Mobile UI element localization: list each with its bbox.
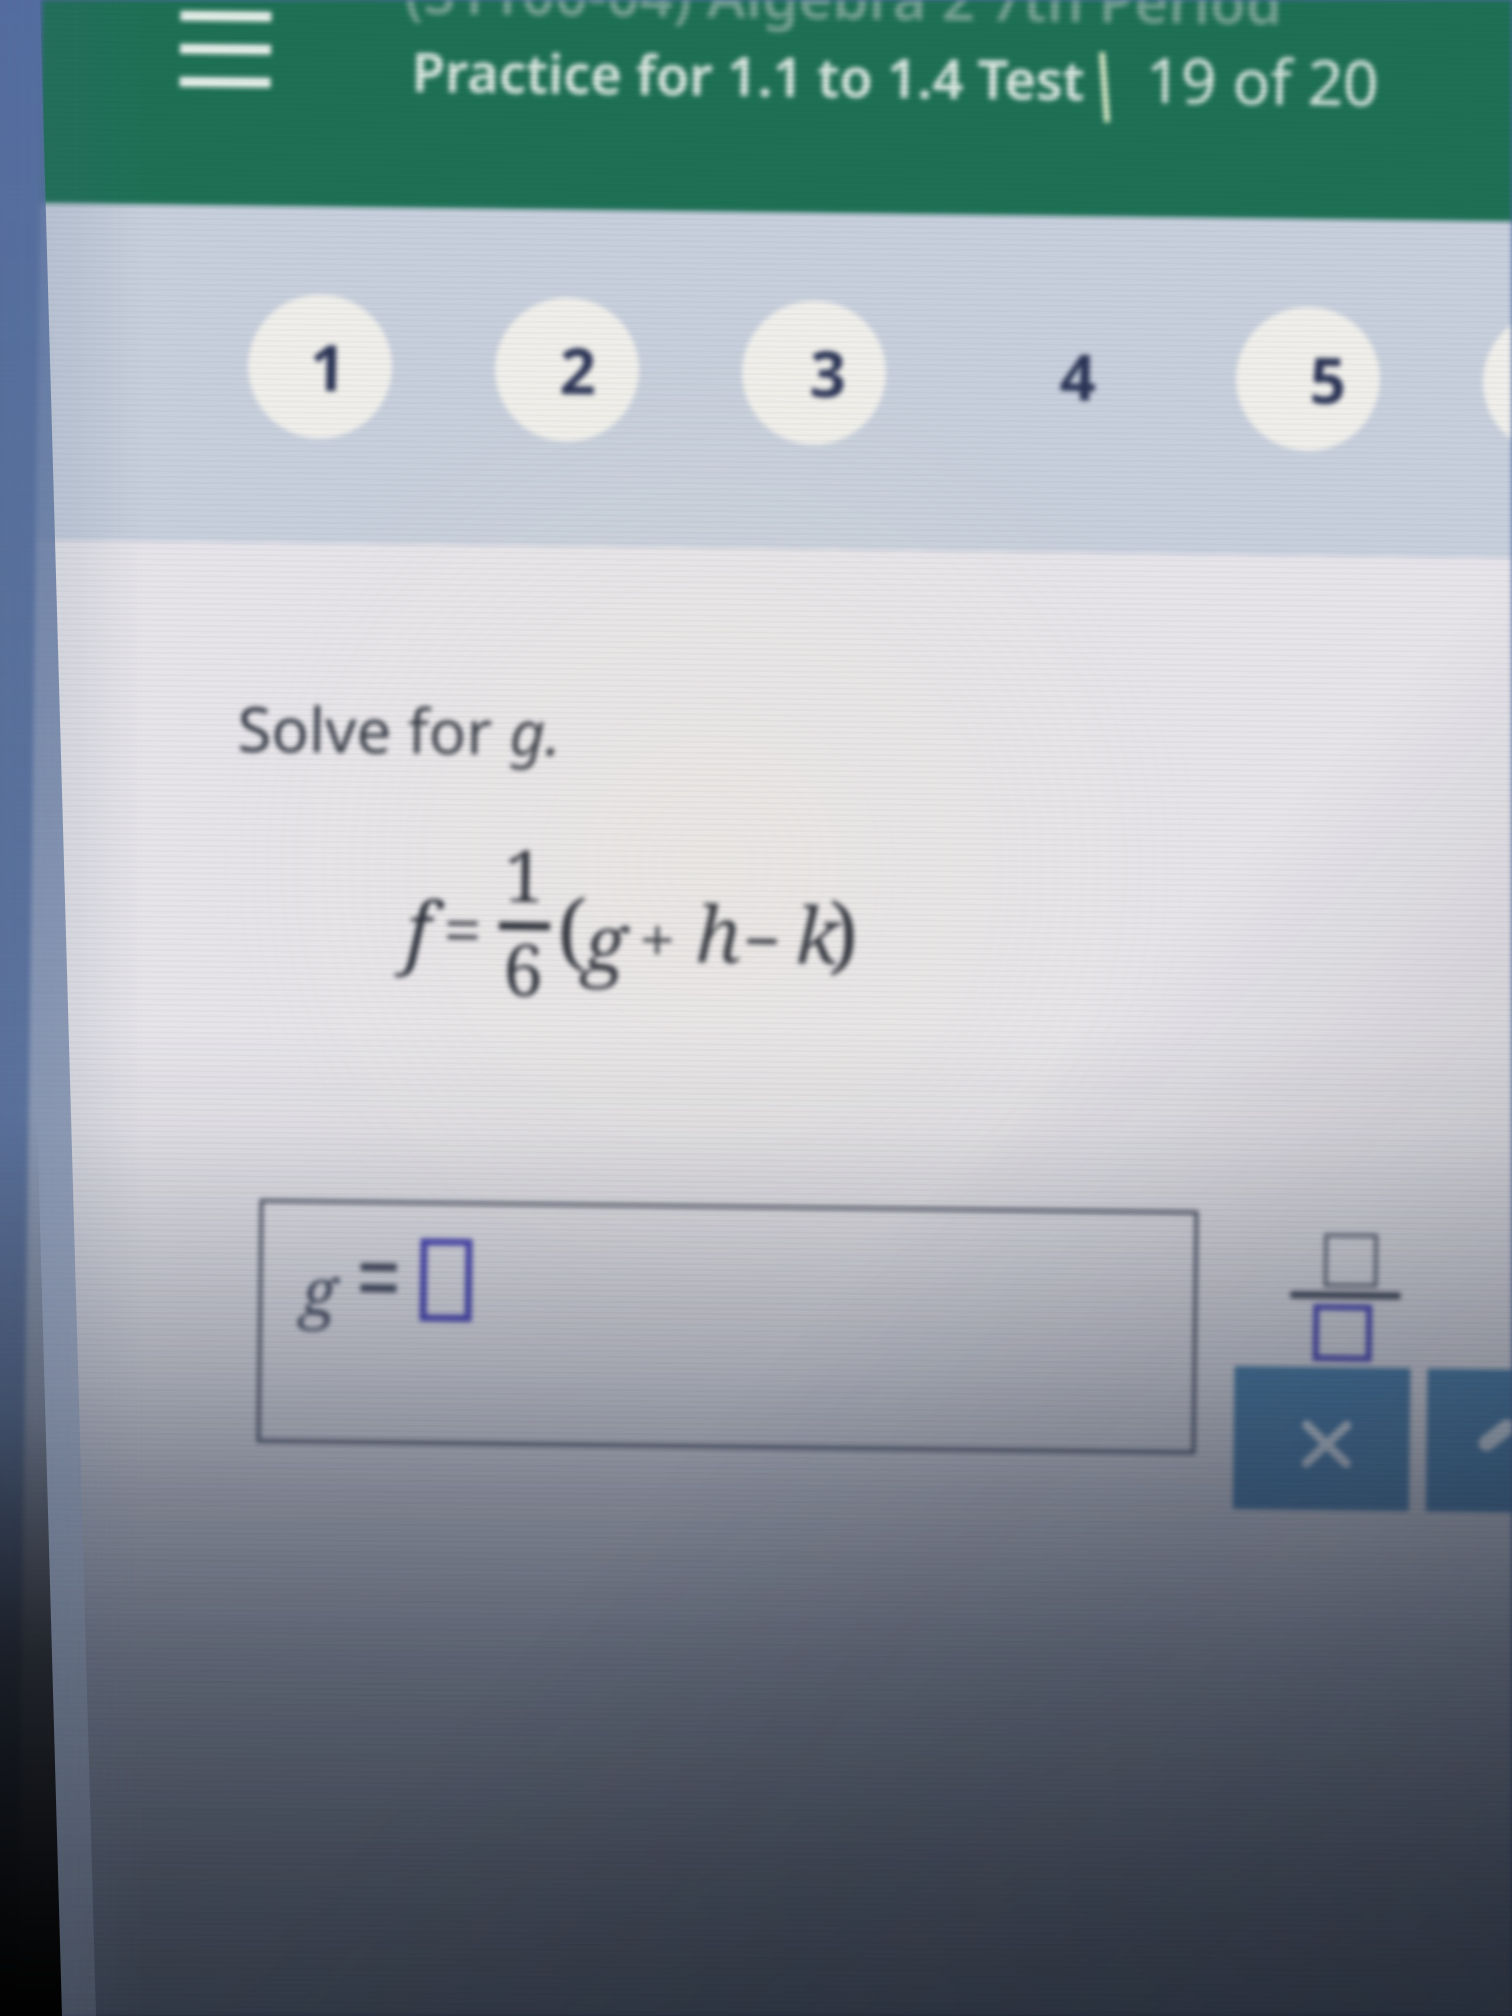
button[interactable]: 3 [740, 300, 884, 444]
button[interactable]: Practice for 1.1 to 1.4 Test [370, 18, 1070, 114]
button[interactable]: Backspace [1432, 1360, 1512, 1503]
staticText: g = [264, 1207, 285, 1226]
staticText: Practice for 1.1 to 1.4 Test [370, 18, 539, 37]
button[interactable]: 6 [1484, 300, 1512, 444]
button[interactable]: Insert fraction [1282, 1218, 1422, 1358]
button[interactable]: Multiply [1239, 1360, 1415, 1503]
button[interactable]: g = [264, 1207, 1199, 1447]
button[interactable]: 5 [1236, 300, 1380, 444]
button[interactable]: 4 [988, 300, 1132, 444]
button[interactable]: Open navigation menu [140, 0, 290, 132]
button[interactable]: 1 [244, 300, 388, 444]
button[interactable]: 2 [492, 300, 636, 444]
